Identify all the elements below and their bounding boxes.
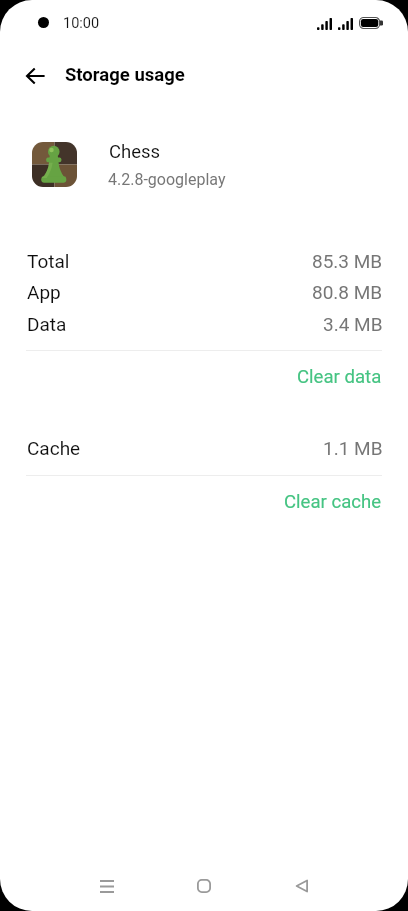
button[interactable]: Back <box>13 53 58 98</box>
staticText: Chess <box>109 141 161 163</box>
staticText: Storage usage <box>65 64 185 86</box>
staticText: Total <box>27 250 70 272</box>
staticText: 80.8 MB <box>312 281 383 303</box>
button[interactable]: Back <box>277 862 325 910</box>
staticText: App <box>27 281 61 303</box>
button[interactable]: Home <box>180 862 228 910</box>
staticText: 1.1 MB <box>323 437 383 459</box>
button[interactable]: Clear data <box>0 354 408 400</box>
button[interactable]: Recent apps <box>83 862 131 910</box>
staticText: 3.4 MB <box>323 313 383 335</box>
staticText: Clear data <box>297 366 382 388</box>
staticText: 4.2.8-googleplay <box>108 170 226 189</box>
staticText: Cache <box>27 437 81 459</box>
staticText: 10:00 <box>63 15 100 32</box>
button[interactable]: Clear cache <box>0 479 408 525</box>
staticText: 85.3 MB <box>312 250 383 272</box>
staticText: Data <box>27 313 67 335</box>
staticText: Clear cache <box>284 491 382 513</box>
